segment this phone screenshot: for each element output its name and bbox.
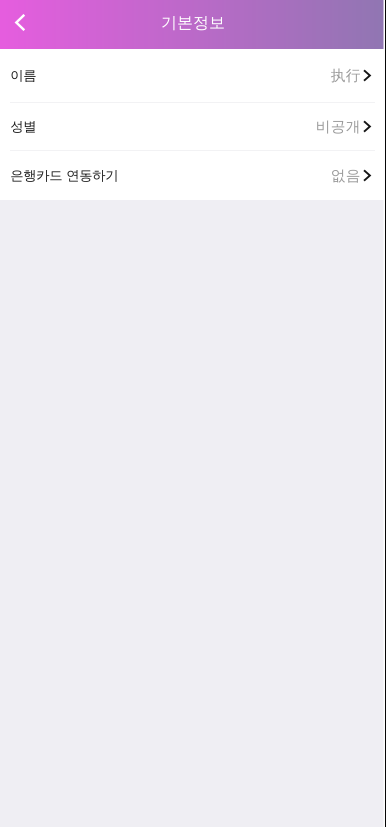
button[interactable]: Back (0, 0, 39, 49)
staticText: 은행카드 연동하기 (10, 167, 118, 184)
staticText: 비공개 (316, 117, 361, 135)
staticText: 执行 (331, 66, 361, 84)
button[interactable]: 이름 (0, 49, 386, 102)
staticText: 이름 (10, 67, 36, 84)
button[interactable]: 은행카드 연동하기 (0, 151, 386, 200)
staticText: 없음 (331, 166, 361, 184)
button[interactable]: 성별 (0, 103, 386, 150)
staticText: 기본정보 (161, 13, 225, 33)
staticText: 성별 (10, 118, 36, 135)
